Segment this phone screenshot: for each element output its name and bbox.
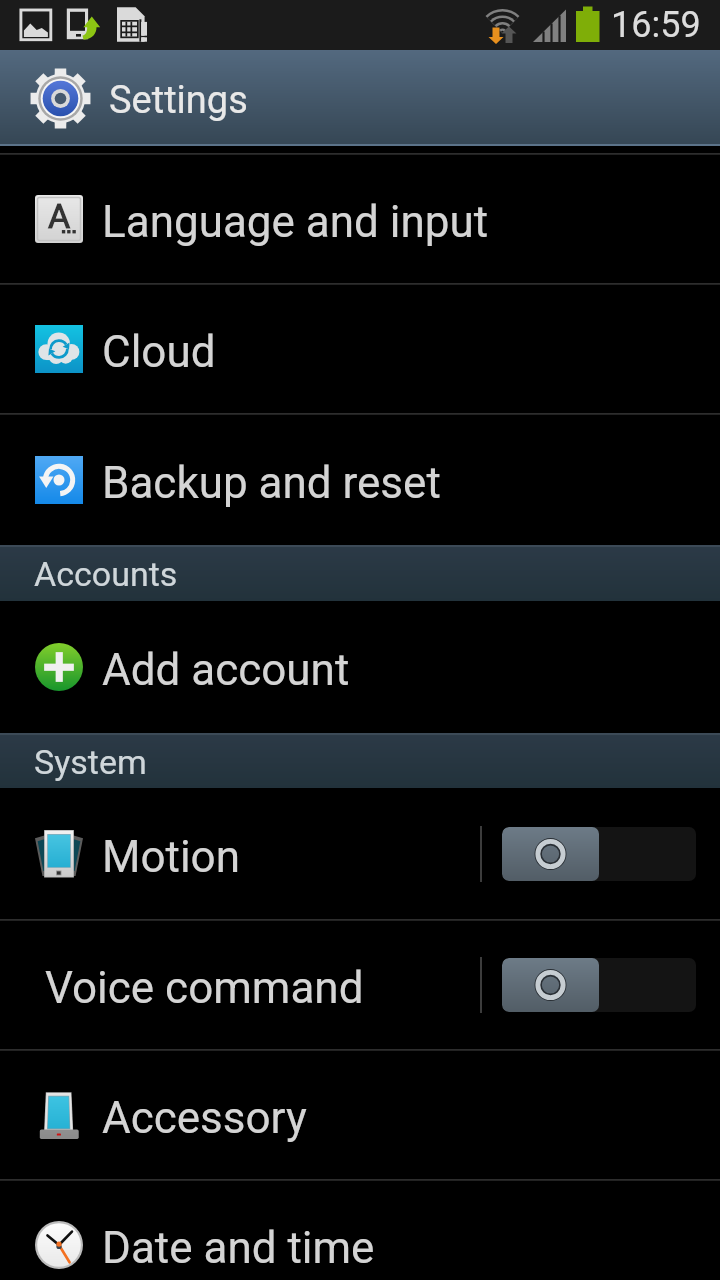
other: Settings app icon <box>30 68 91 129</box>
staticText: Voice command <box>45 962 364 1014</box>
button[interactable]: Turn Motion on or off <box>502 827 696 881</box>
staticText: Date and time <box>102 1222 375 1274</box>
staticText: Backup and reset <box>102 457 441 509</box>
staticText: A <box>48 196 71 236</box>
button[interactable]: Add account <box>0 601 720 733</box>
staticText: Accessory <box>102 1092 307 1144</box>
staticText: Accounts <box>34 554 178 594</box>
button[interactable]: Turn Voice command on or off <box>502 958 696 1012</box>
button[interactable]: A <box>0 155 720 283</box>
button[interactable]: Cloud <box>0 285 720 413</box>
button[interactable]: Motion <box>0 788 720 919</box>
staticText: Add account <box>102 644 350 696</box>
button[interactable]: Settings app icon <box>0 50 720 146</box>
staticText: Cloud <box>102 326 216 378</box>
staticText: 16:59 <box>611 4 701 46</box>
button[interactable]: Accessory <box>0 1051 720 1179</box>
staticText: System <box>34 742 147 782</box>
staticText: Language and input <box>102 196 489 248</box>
staticText: Motion <box>102 831 240 883</box>
staticText: Settings <box>109 78 248 123</box>
button[interactable]: Voice command <box>0 921 720 1049</box>
button[interactable]: Backup and reset <box>0 415 720 545</box>
button[interactable]: Date and time <box>0 1181 720 1280</box>
